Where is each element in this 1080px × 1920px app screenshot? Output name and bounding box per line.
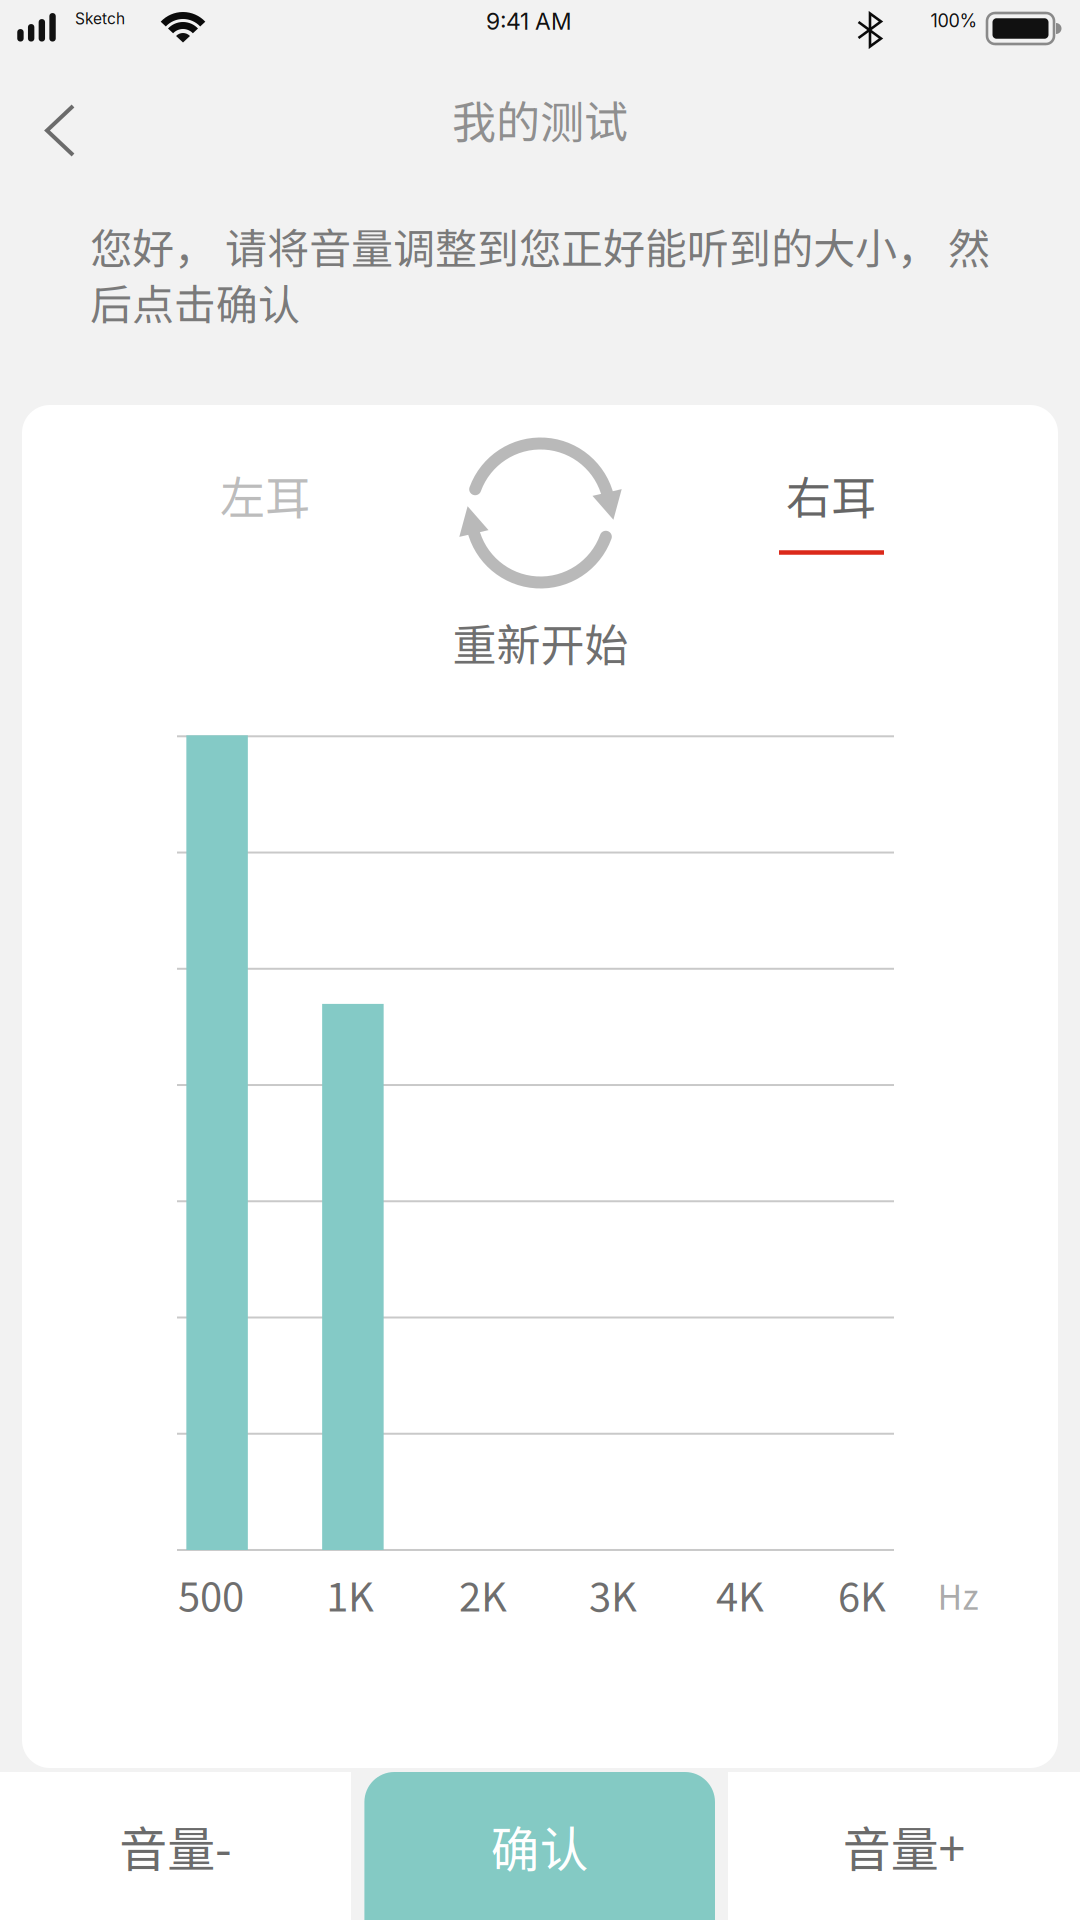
staticText: 您好， 请将音量调整到您正好能听到的大小， 然 [90,216,990,276]
staticText: 1K [326,1565,374,1623]
button[interactable]: 重新开始 [410,433,670,673]
button[interactable]: 左耳 [175,455,355,535]
staticText: 100% [930,10,977,32]
staticText: 确认 [491,1811,589,1881]
button[interactable]: 确认 [364,1772,715,1920]
staticText: 4K [716,1565,764,1623]
button[interactable] [20,90,100,170]
staticText: Sketch [75,9,125,28]
staticText: Hz [937,1570,978,1620]
staticText: 音量+ [842,1811,965,1881]
staticText: 3K [589,1565,637,1623]
staticText: 重新开始 [452,610,628,674]
button[interactable]: 音量+ [728,1772,1080,1920]
button[interactable]: 右耳 [741,445,921,575]
staticText: 500 [178,1565,244,1623]
staticText: 9:41 AM [486,8,572,35]
staticText: 左耳 [220,462,310,528]
staticText: 音量- [119,1811,232,1881]
staticText: 右耳 [786,462,876,528]
staticText: 6K [838,1565,886,1623]
staticText: 后点击确认 [90,272,300,332]
button[interactable]: 音量- [0,1772,351,1920]
staticText: 2K [459,1565,507,1623]
staticText: 我的测试 [452,87,628,151]
